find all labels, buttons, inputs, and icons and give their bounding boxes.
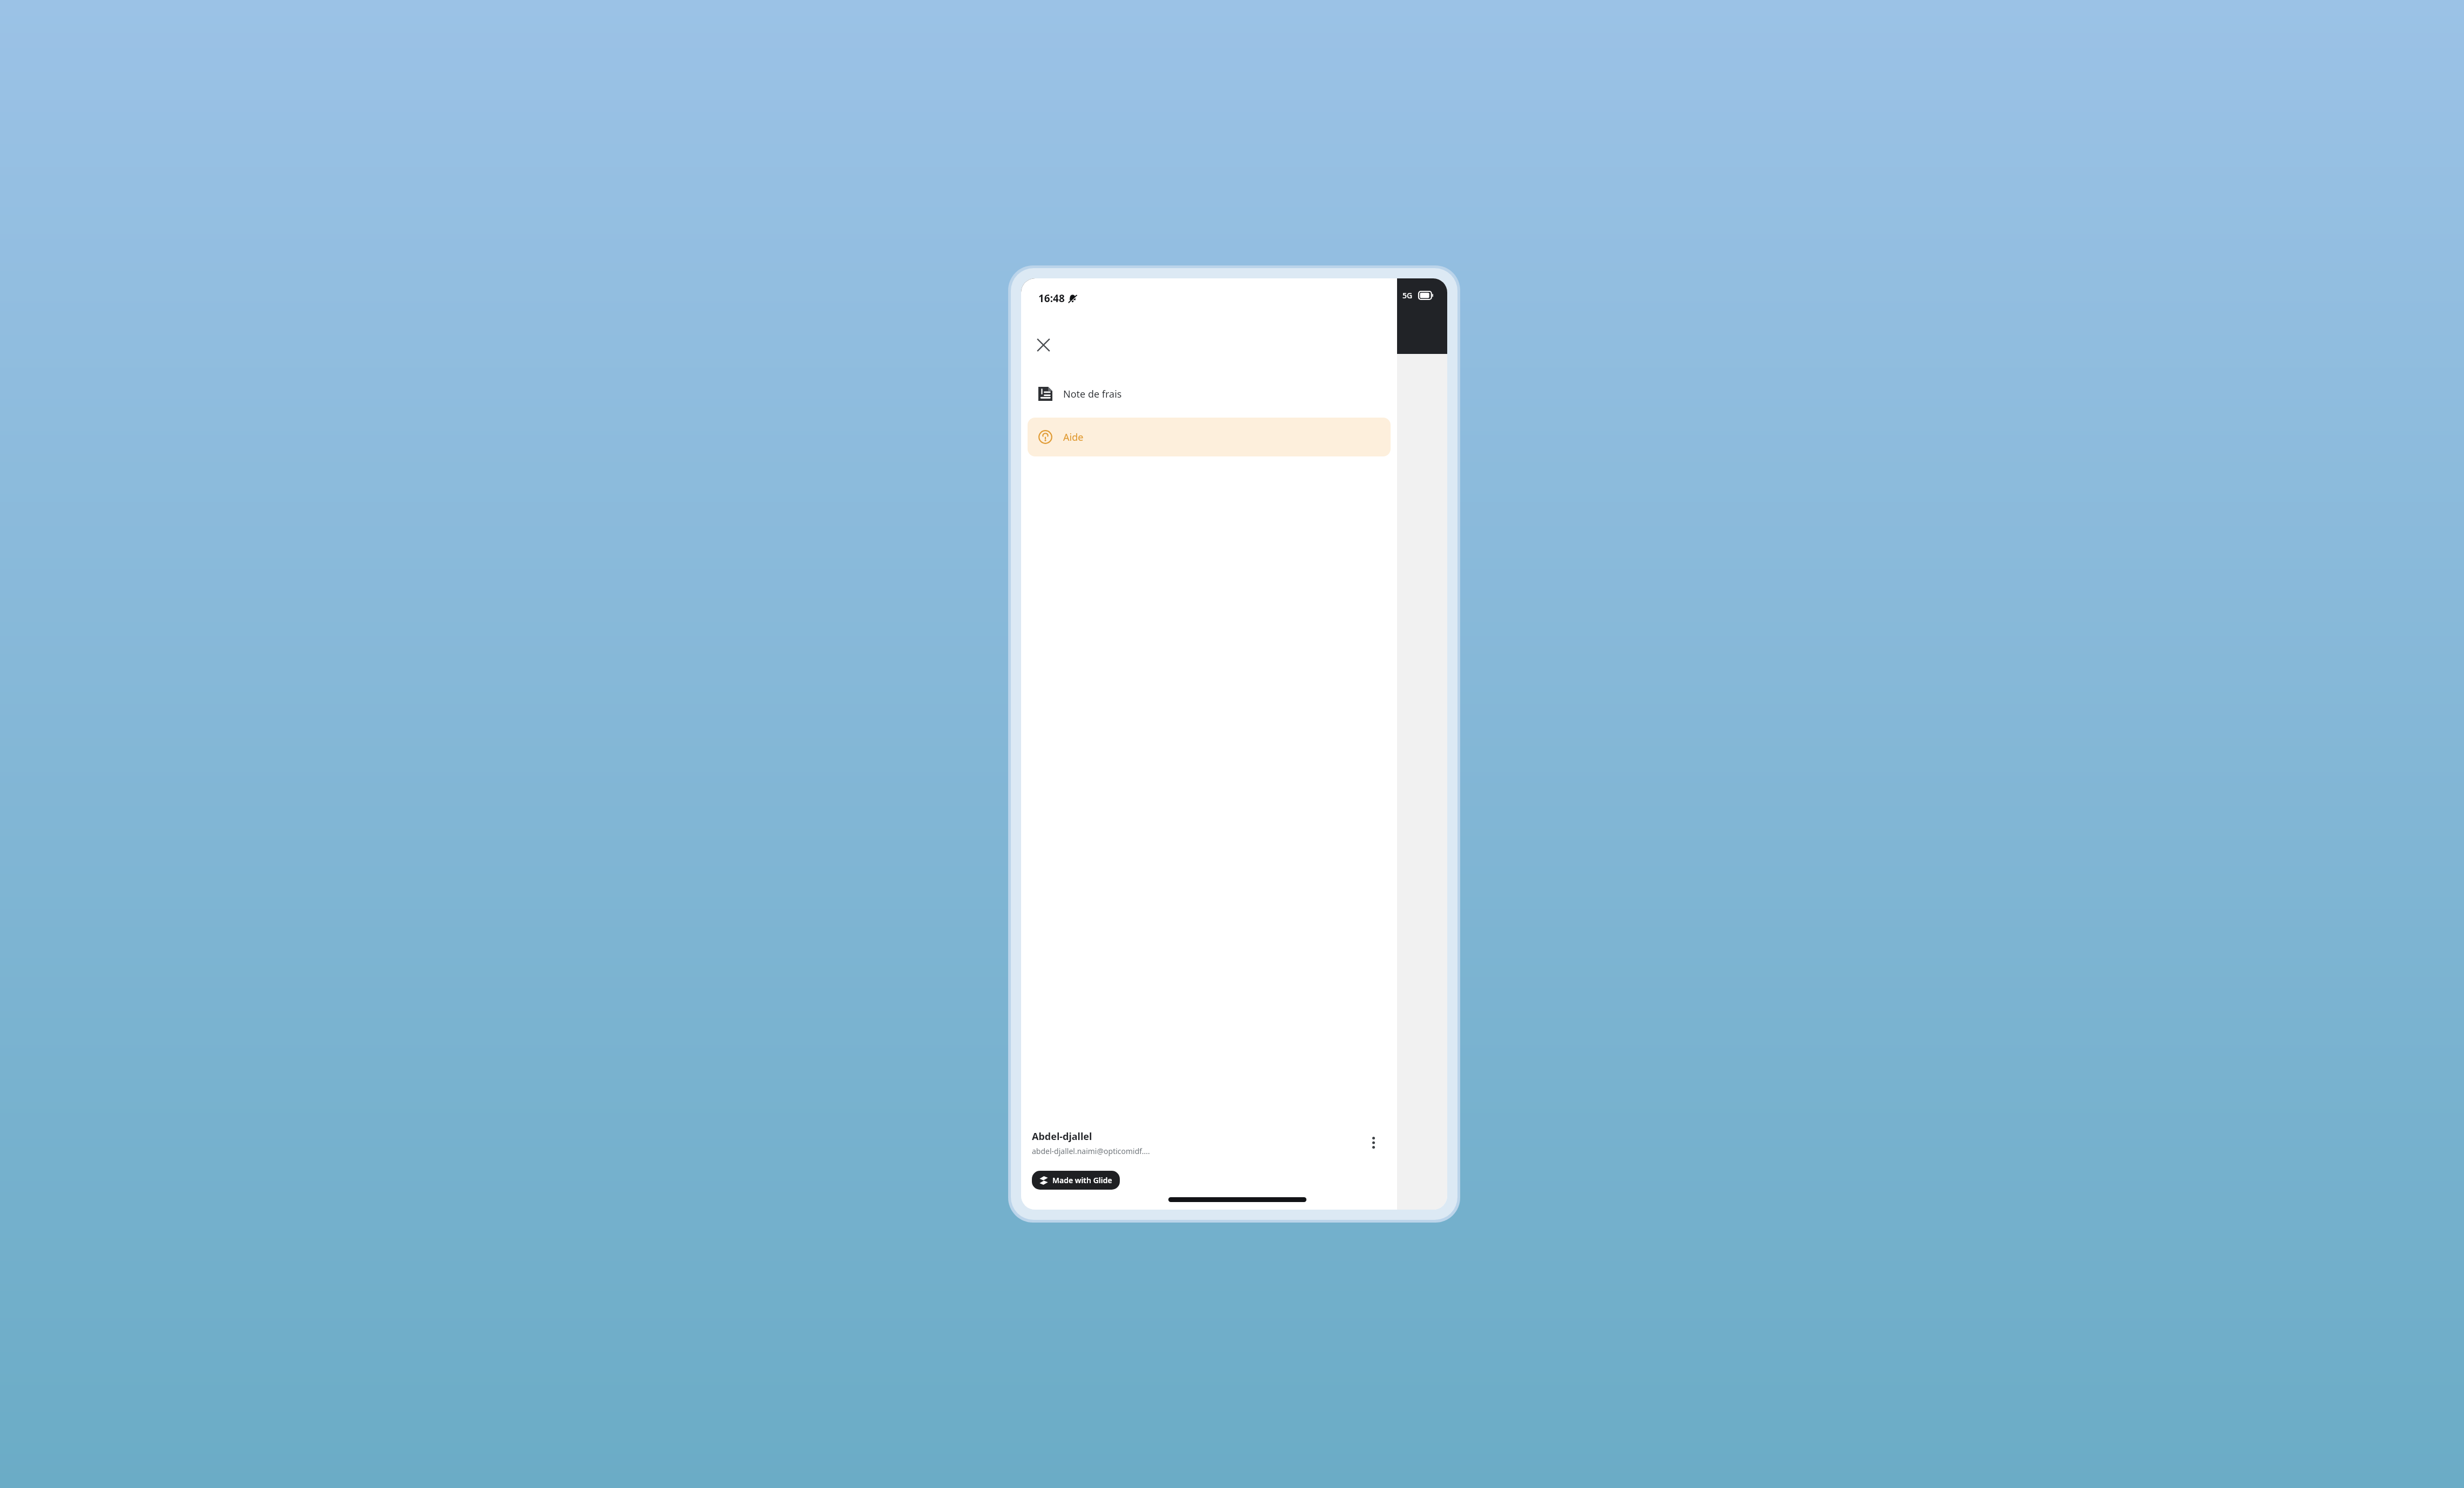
staticText: abdel-djallel.naimi@opticomidf.... (1032, 1146, 1150, 1156)
staticText: Aide (1063, 431, 1084, 444)
staticText: 5G (1402, 290, 1413, 301)
staticText: Petit déjeuner non remboursé (1033, 413, 1163, 426)
staticText: Abdel-djallel (1032, 1130, 1092, 1143)
button[interactable]: Aide (1028, 418, 1391, 456)
button[interactable]: Accepté, en attente (1033, 594, 1438, 638)
button[interactable]: Pas encore envoyé (1033, 506, 1438, 550)
button[interactable]: Account options (1360, 1130, 1386, 1156)
button[interactable]: Note de frais (1028, 374, 1391, 413)
button[interactable]: Made with Glide (1032, 1171, 1120, 1190)
button[interactable]: Pas accepté (1033, 550, 1438, 594)
staticText: Made with Glide (1052, 1175, 1112, 1185)
staticText: 1 repas remboursé par jour travaillé jus… (1033, 394, 1261, 406)
button[interactable]: Remboursé (1033, 638, 1438, 682)
staticText: Les péages pour aller au travail ne sont… (1033, 433, 1270, 445)
staticText: Note de frais (1063, 387, 1122, 401)
button[interactable]: Abdel-djallel (1032, 1117, 1386, 1169)
staticText: 16:48 (1038, 291, 1065, 305)
button[interactable]: Open menu (1030, 318, 1059, 347)
button[interactable]: Close menu (1029, 330, 1058, 359)
staticText: Parking et péage remboursé si déplacemen… (1033, 452, 1286, 465)
